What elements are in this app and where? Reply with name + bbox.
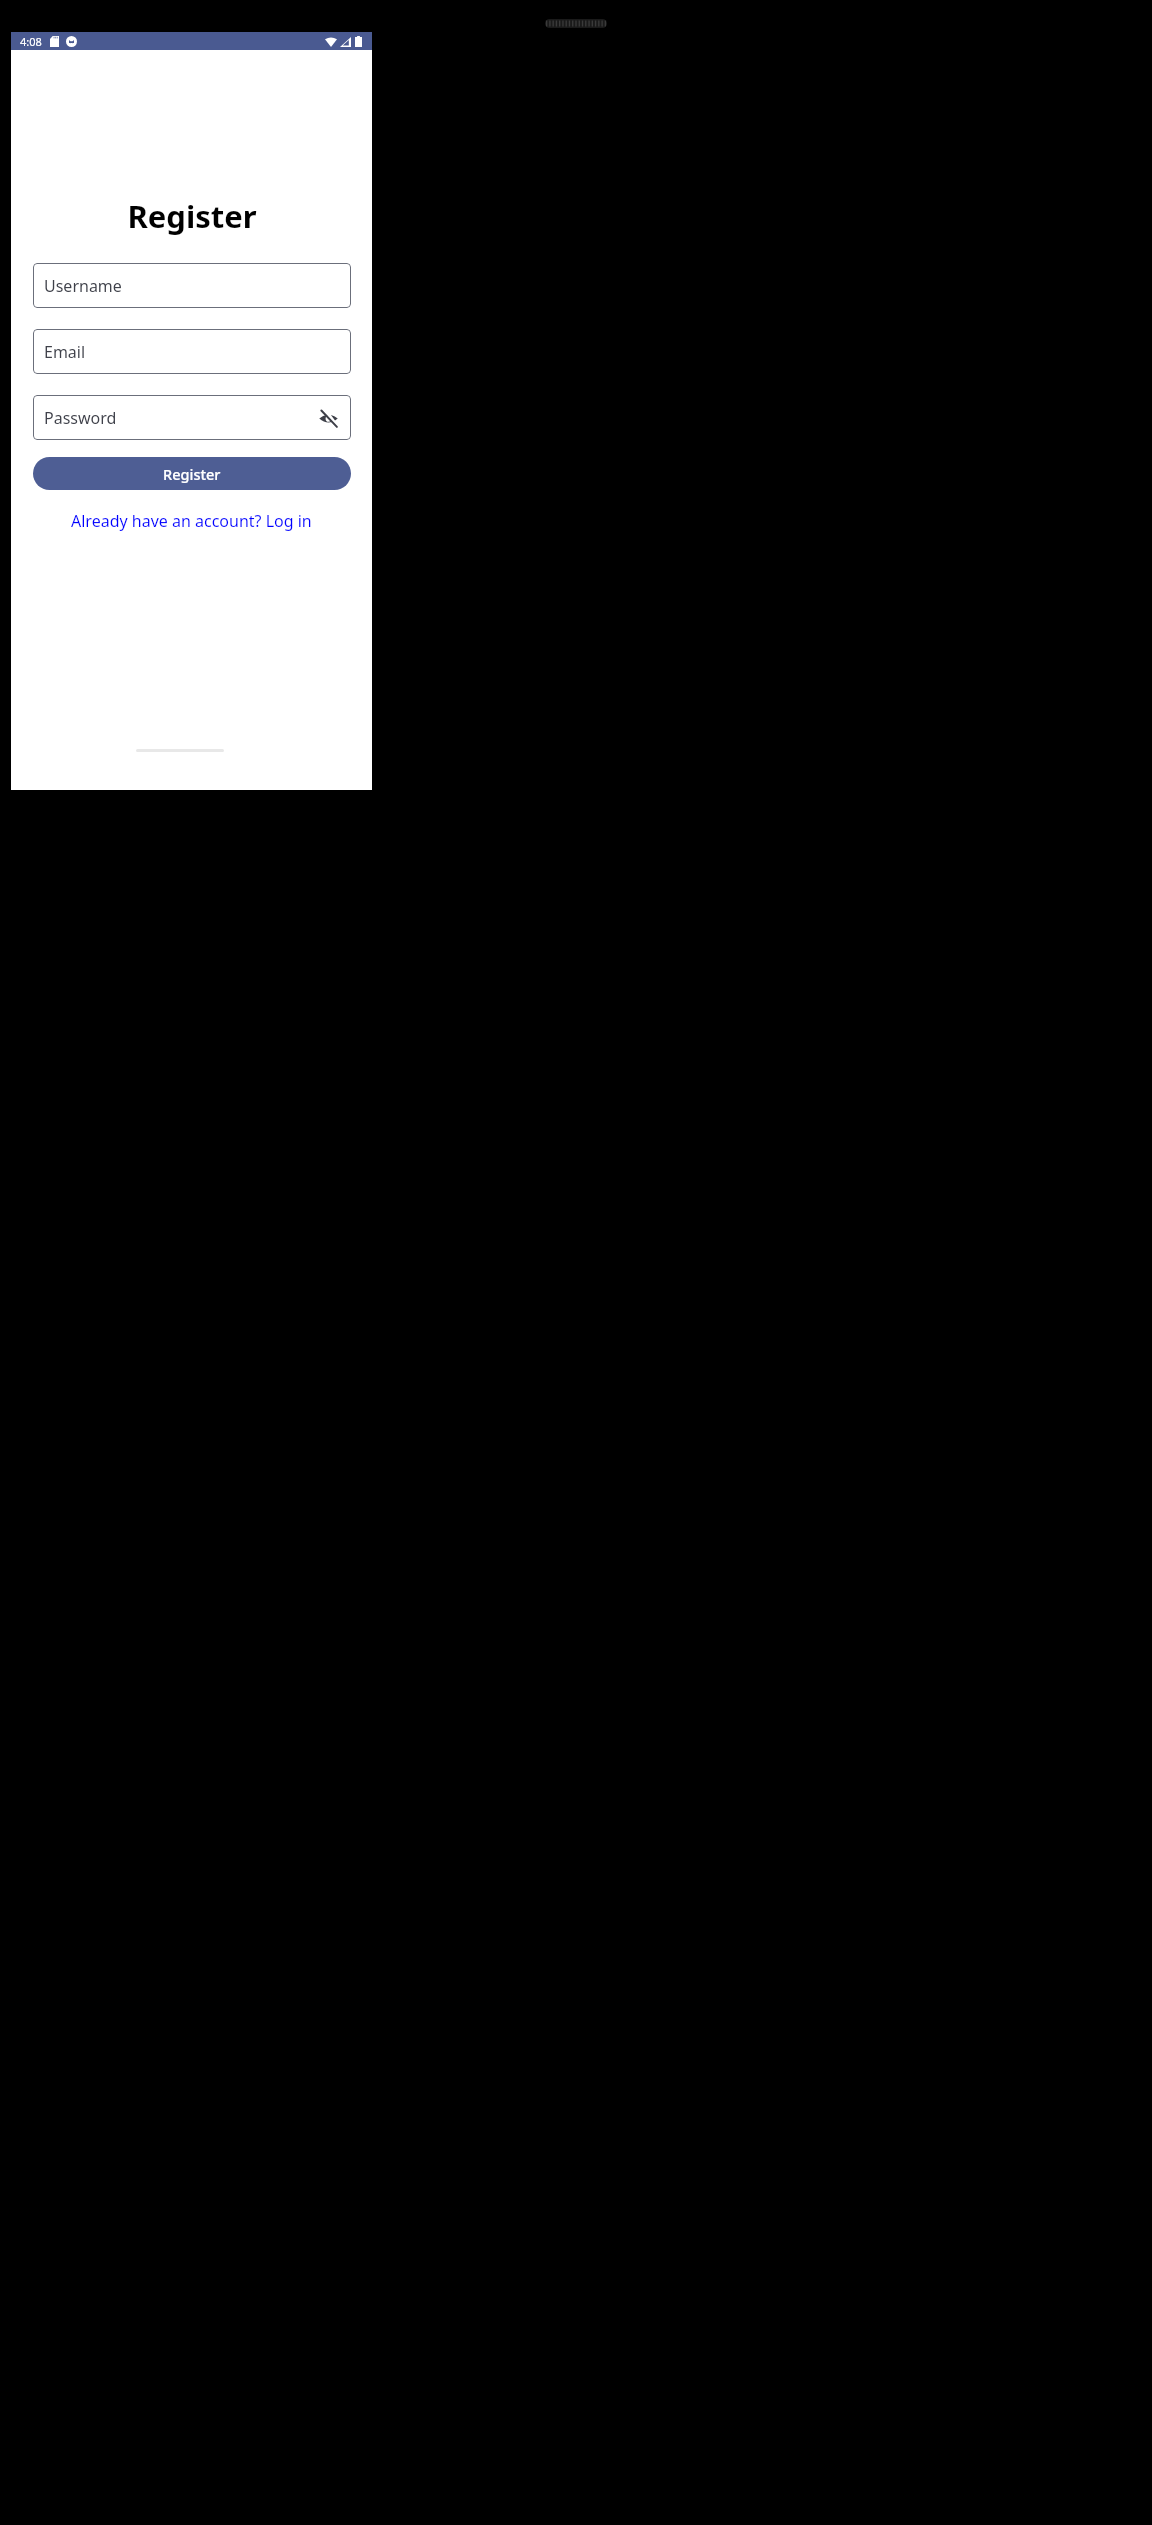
staticText: Username bbox=[44, 275, 122, 297]
staticText: Password bbox=[44, 407, 117, 429]
staticText: Already have an account? Log in bbox=[71, 510, 312, 532]
button[interactable]: Register bbox=[33, 457, 351, 490]
staticText: Register bbox=[163, 464, 221, 484]
button[interactable]: Already have an account? Log in bbox=[65, 506, 318, 536]
button[interactable]: Password bbox=[33, 395, 351, 440]
button[interactable]: Show password bbox=[315, 405, 341, 431]
staticText: 4:08 bbox=[20, 34, 42, 49]
button[interactable]: Email bbox=[33, 329, 351, 374]
staticText: Email bbox=[44, 341, 86, 363]
staticText: Register bbox=[127, 195, 257, 237]
button[interactable]: Username bbox=[33, 263, 351, 308]
